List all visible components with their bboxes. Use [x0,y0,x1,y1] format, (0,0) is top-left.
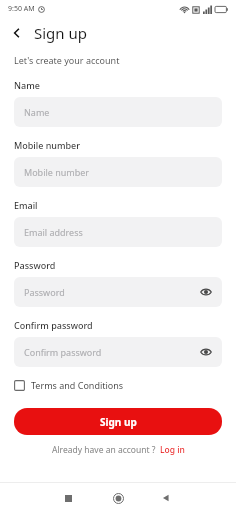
staticText: Mobile number [24,166,90,178]
button[interactable]: Back [154,486,178,510]
button[interactable]: Email address [14,217,222,247]
button[interactable]: Password [14,277,222,307]
staticText: 9:50 AM [8,4,35,14]
button[interactable]: Recent apps [56,486,80,510]
staticText: Name [14,79,40,91]
staticText: Name [24,106,50,118]
button[interactable]: Home [106,486,130,510]
staticText: Password [14,259,56,271]
button[interactable]: Log in [160,444,185,456]
staticText: Password [24,286,65,298]
staticText: Confirm password [24,346,102,358]
button[interactable]: Sign up [14,408,222,435]
staticText: Terms and Conditions [31,379,124,391]
button[interactable]: Back [6,22,28,44]
staticText: Let's create your account [14,54,120,66]
staticText: Email [14,199,38,211]
staticText: Log in [160,444,185,456]
button[interactable]: Mobile number [14,157,222,187]
staticText: Already have an account ? [52,444,156,456]
button[interactable]: Confirm password [14,337,222,367]
button[interactable]: Name [14,97,222,127]
staticText: Confirm password [14,319,93,331]
staticText: Sign up [100,415,137,429]
staticText: Sign up [34,23,87,43]
button[interactable]: Show password [196,282,216,302]
button[interactable]: Show password [196,342,216,362]
staticText: Mobile number [14,139,81,151]
staticText: Email address [24,226,83,238]
button[interactable]: Terms and Conditions [14,379,124,391]
